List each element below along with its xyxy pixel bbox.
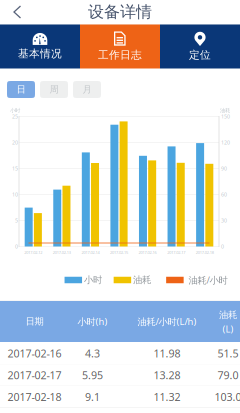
staticText: 0 bbox=[15, 243, 18, 250]
staticText: 月 bbox=[82, 84, 91, 95]
staticText: 10 bbox=[12, 191, 18, 198]
staticText: 150 bbox=[221, 113, 230, 120]
staticText: 小时 bbox=[10, 107, 20, 114]
staticText: 51.5 bbox=[217, 346, 238, 361]
staticText: 120 bbox=[221, 139, 230, 146]
staticText: 油耗/小时(L/h) bbox=[137, 315, 196, 328]
staticText: 日 bbox=[16, 84, 25, 95]
staticText: 25 bbox=[12, 113, 18, 120]
staticText: 13.28 bbox=[153, 368, 180, 382]
button[interactable]: 日 bbox=[7, 81, 35, 98]
staticText: 11.98 bbox=[153, 346, 180, 361]
staticText: 设备详情 bbox=[88, 2, 152, 22]
staticText: 15 bbox=[12, 165, 18, 172]
staticText: 2017-02-16 bbox=[8, 346, 62, 361]
button[interactable]: 工作日志 bbox=[80, 24, 160, 68]
staticText: 90 bbox=[221, 165, 227, 172]
staticText: 2017-02-17 bbox=[167, 250, 185, 255]
staticText: 周 bbox=[49, 84, 58, 95]
staticText: 基本情况 bbox=[18, 47, 62, 60]
staticText: 2017-02-15 bbox=[110, 250, 128, 255]
button[interactable]: 2017-02-17 bbox=[0, 364, 240, 386]
staticText: 小时(h) bbox=[77, 315, 107, 328]
staticText: 工作日志 bbox=[98, 48, 142, 61]
staticText: (L) bbox=[222, 323, 233, 335]
button[interactable]: 2017-02-18 bbox=[0, 386, 240, 408]
staticText: 油耗 bbox=[133, 274, 151, 286]
staticText: 9.1 bbox=[85, 390, 100, 404]
staticText: 30 bbox=[221, 217, 227, 224]
staticText: 4.3 bbox=[85, 346, 100, 361]
staticText: 5 bbox=[15, 217, 18, 224]
staticText: 日期 bbox=[26, 316, 44, 327]
staticText: 油耗/小时 bbox=[188, 274, 227, 286]
staticText: 定位 bbox=[189, 48, 211, 61]
button[interactable]: 基本情况 bbox=[0, 24, 80, 68]
button[interactable]: 周 bbox=[40, 81, 68, 98]
button[interactable]: 月 bbox=[73, 81, 101, 98]
staticText: 5.95 bbox=[82, 368, 103, 382]
staticText: 2017-02-18 bbox=[8, 390, 62, 404]
staticText: 11.32 bbox=[153, 390, 180, 404]
staticText: 小时 bbox=[84, 274, 102, 286]
staticText: 2017-02-18 bbox=[196, 250, 214, 255]
button[interactable]: 定位 bbox=[160, 24, 240, 68]
staticText: 103.0 bbox=[214, 390, 240, 404]
staticText: 2017-02-14 bbox=[81, 250, 99, 255]
staticText: 60 bbox=[221, 191, 227, 198]
staticText: 2017-02-16 bbox=[139, 250, 157, 255]
button[interactable]: 2017-02-16 bbox=[0, 343, 240, 364]
staticText: 79.0 bbox=[217, 368, 238, 382]
staticText: 油耗 bbox=[220, 107, 230, 114]
staticText: 2017-02-13 bbox=[53, 250, 71, 255]
staticText: 20 bbox=[12, 139, 18, 146]
staticText: 0 bbox=[221, 243, 224, 250]
staticText: 2017-02-17 bbox=[8, 368, 62, 382]
button[interactable]: 返回 bbox=[0, 0, 30, 24]
staticText: 油耗 bbox=[219, 309, 237, 321]
staticText: 2017-02-12 bbox=[24, 250, 42, 255]
